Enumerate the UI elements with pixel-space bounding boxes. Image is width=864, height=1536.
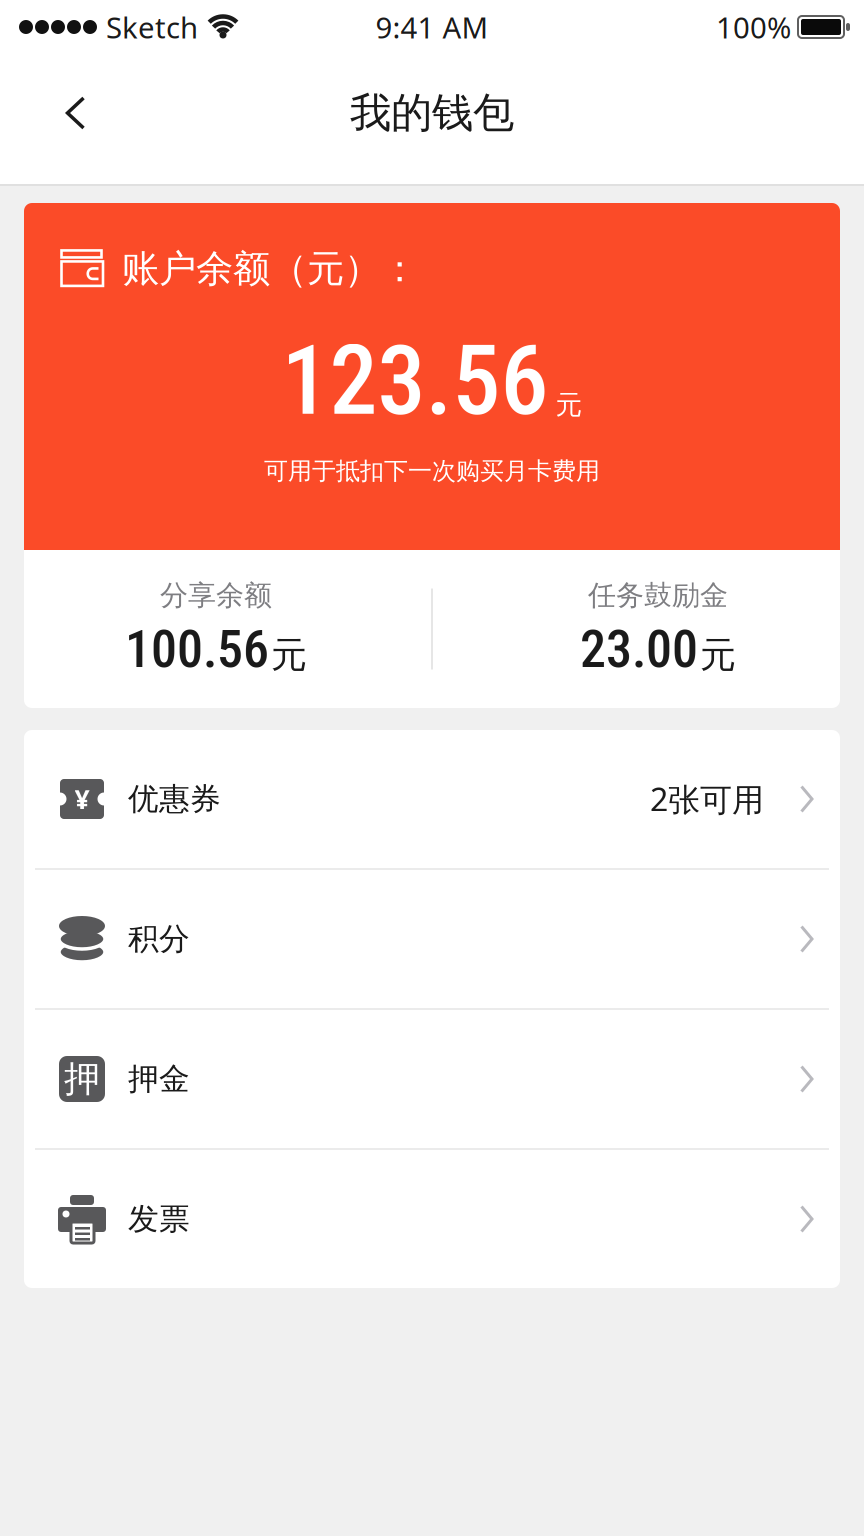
staticText: 元 <box>271 633 307 677</box>
staticText: 123.56 <box>281 325 548 437</box>
staticText: ¥ <box>74 781 89 817</box>
staticText: 100.56 <box>125 619 269 680</box>
staticText: 9:41 AM <box>375 7 488 46</box>
staticText: 任务鼓励金 <box>588 578 728 613</box>
staticText: 优惠券 <box>128 780 221 818</box>
staticText: 可用于抵扣下一次购买月卡费用 <box>264 456 600 486</box>
staticText: 元 <box>700 633 736 677</box>
staticText: 押金 <box>128 1060 190 1098</box>
staticText: 23.00 <box>580 619 698 680</box>
staticText: 我的钱包 <box>350 88 514 138</box>
staticText: 100% <box>716 7 791 46</box>
button[interactable]: 押 <box>24 1010 840 1148</box>
staticText: 元 <box>555 389 582 421</box>
button[interactable]: ¥ <box>24 730 840 868</box>
staticText: 分享余额 <box>160 578 272 613</box>
staticText: 账户余额（元）： <box>122 246 418 292</box>
button[interactable]: 积分 <box>24 870 840 1008</box>
staticText: 2张可用 <box>650 778 764 820</box>
staticText: 押 <box>64 1057 100 1101</box>
button[interactable]: 发票 <box>24 1150 840 1288</box>
button[interactable]: Back <box>0 66 116 160</box>
staticText: 发票 <box>128 1200 190 1238</box>
staticText: 积分 <box>128 920 190 958</box>
staticText: Sketch <box>106 7 198 46</box>
